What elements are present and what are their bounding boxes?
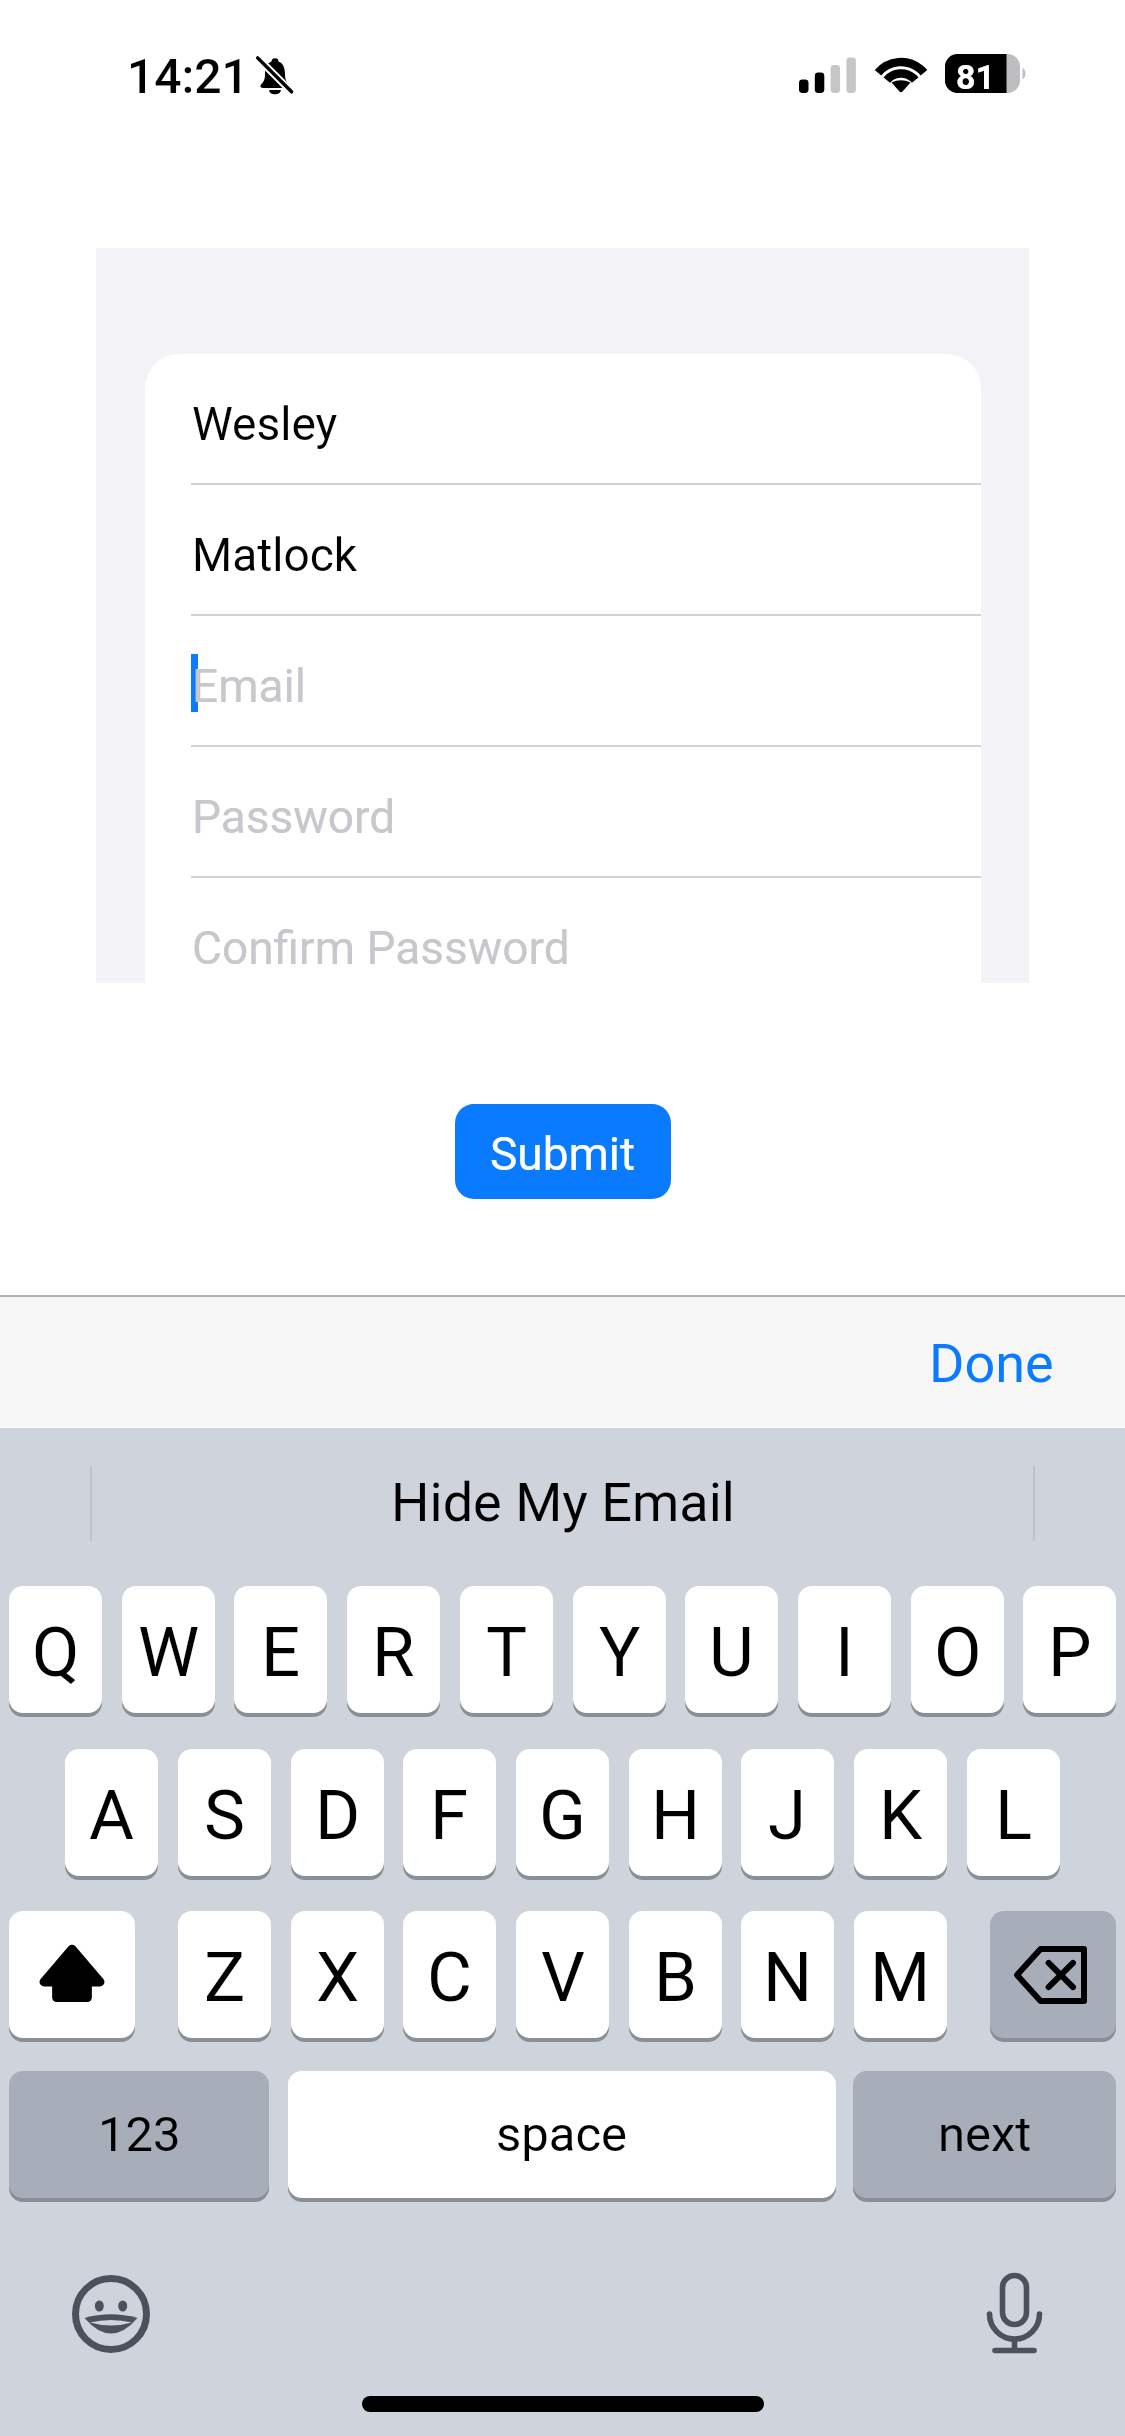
button[interactable]: J xyxy=(741,1749,834,1876)
button[interactable]: Z xyxy=(178,1911,271,2038)
staticText: Password xyxy=(192,790,396,844)
button[interactable]: Y xyxy=(573,1586,666,1713)
button[interactable]: Submit xyxy=(455,1104,671,1199)
staticText: W xyxy=(138,1612,200,1693)
staticText: E xyxy=(261,1612,301,1693)
staticText: J xyxy=(768,1775,807,1856)
staticText: next xyxy=(938,2106,1032,2163)
staticText: H xyxy=(651,1775,701,1856)
button[interactable]: Emoji keyboard xyxy=(72,2275,150,2353)
staticText: G xyxy=(539,1775,586,1856)
button[interactable]: K xyxy=(854,1749,947,1876)
button[interactable]: V xyxy=(516,1911,609,2038)
button[interactable]: X xyxy=(291,1911,384,2038)
button[interactable]: P xyxy=(1023,1586,1116,1713)
staticText: I xyxy=(835,1612,854,1693)
staticText: D xyxy=(315,1775,361,1856)
button[interactable]: O xyxy=(911,1586,1004,1713)
staticText: Wesley xyxy=(192,397,338,451)
button[interactable]: Q xyxy=(9,1586,102,1713)
staticText: Q xyxy=(32,1612,80,1693)
button[interactable]: Hide My Email xyxy=(0,1442,1125,1562)
staticText: N xyxy=(763,1937,813,2018)
button[interactable]: B xyxy=(629,1911,722,2038)
staticText: R xyxy=(372,1612,415,1693)
button[interactable]: Done xyxy=(935,1295,1125,1427)
button[interactable]: Dictation xyxy=(986,2270,1043,2354)
button[interactable]: H xyxy=(629,1749,722,1876)
staticText: C xyxy=(427,1937,472,2018)
button[interactable]: Password xyxy=(145,747,981,878)
staticText: M xyxy=(870,1937,931,2018)
staticText: P xyxy=(1048,1612,1092,1693)
staticText: Submit xyxy=(490,1127,636,1181)
staticText: B xyxy=(654,1937,697,2018)
staticText: space xyxy=(496,2106,628,2163)
button[interactable]: L xyxy=(967,1749,1060,1876)
staticText: Y xyxy=(599,1612,641,1693)
button[interactable]: Backspace xyxy=(990,1911,1116,2038)
button[interactable]: C xyxy=(403,1911,496,2038)
staticText: 81 xyxy=(945,57,1006,97)
button[interactable]: E xyxy=(234,1586,327,1713)
staticText: Done xyxy=(929,1332,1054,1395)
button[interactable]: A xyxy=(65,1749,158,1876)
button[interactable]: Email xyxy=(145,616,981,747)
staticText: F xyxy=(430,1775,469,1856)
staticText: V xyxy=(541,1937,585,2018)
staticText: S xyxy=(204,1775,245,1856)
button[interactable]: M xyxy=(854,1911,947,2038)
staticText: A xyxy=(89,1775,135,1856)
staticText: Matlock xyxy=(192,528,358,582)
button[interactable]: W xyxy=(122,1586,215,1713)
button[interactable]: G xyxy=(516,1749,609,1876)
button[interactable]: Shift xyxy=(9,1911,135,2038)
staticText: X xyxy=(316,1937,360,2018)
button[interactable]: S xyxy=(178,1749,271,1876)
staticText: K xyxy=(879,1775,923,1856)
button[interactable]: space xyxy=(288,2071,836,2198)
button[interactable]: F xyxy=(403,1749,496,1876)
staticText: Email xyxy=(192,659,306,713)
staticText: L xyxy=(995,1775,1033,1856)
button[interactable]: T xyxy=(460,1586,553,1713)
button[interactable]: next xyxy=(853,2071,1116,2198)
button[interactable]: Matlock xyxy=(145,485,981,616)
staticText: 14:21 xyxy=(127,48,249,104)
staticText: Hide My Email xyxy=(391,1471,735,1534)
button[interactable]: U xyxy=(685,1586,778,1713)
button[interactable]: I xyxy=(798,1586,891,1713)
staticText: Z xyxy=(204,1937,246,2018)
staticText: O xyxy=(934,1612,982,1693)
button[interactable]: R xyxy=(347,1586,440,1713)
button[interactable]: 123 xyxy=(9,2071,269,2198)
button[interactable]: Wesley xyxy=(145,354,981,485)
staticText: U xyxy=(709,1612,754,1693)
staticText: T xyxy=(486,1612,528,1693)
button[interactable]: D xyxy=(291,1749,384,1876)
button[interactable]: Confirm Password xyxy=(145,878,981,983)
button[interactable]: N xyxy=(741,1911,834,2038)
staticText: Confirm Password xyxy=(192,921,570,975)
staticText: 123 xyxy=(98,2106,181,2163)
